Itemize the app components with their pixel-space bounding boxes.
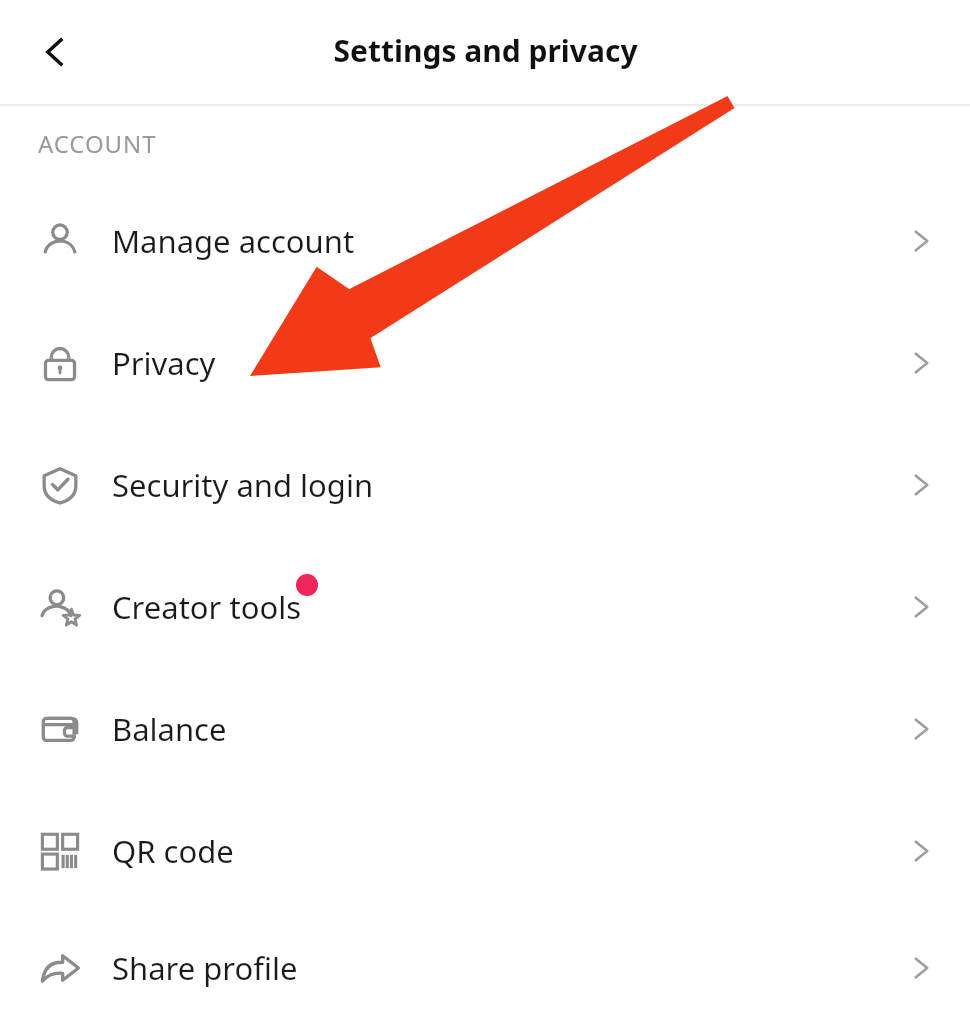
- button[interactable]: Balance: [0, 668, 970, 790]
- staticText: Security and login: [112, 464, 374, 506]
- button[interactable]: Privacy: [0, 302, 970, 424]
- button[interactable]: Share profile: [0, 912, 970, 1024]
- staticText: Settings and privacy: [333, 30, 638, 71]
- button[interactable]: Security and login: [0, 424, 970, 546]
- button[interactable]: Creator tools: [0, 546, 970, 668]
- staticText: QR code: [112, 830, 234, 872]
- staticText: Share profile: [112, 947, 298, 989]
- staticText: Balance: [112, 708, 227, 750]
- staticText: Creator tools: [112, 586, 302, 628]
- button[interactable]: Back: [22, 19, 88, 85]
- button[interactable]: QR code: [0, 790, 970, 912]
- staticText: Manage account: [112, 220, 355, 262]
- staticText: Privacy: [112, 342, 216, 384]
- button[interactable]: Manage account: [0, 180, 970, 302]
- staticText: ACCOUNT: [38, 127, 157, 160]
